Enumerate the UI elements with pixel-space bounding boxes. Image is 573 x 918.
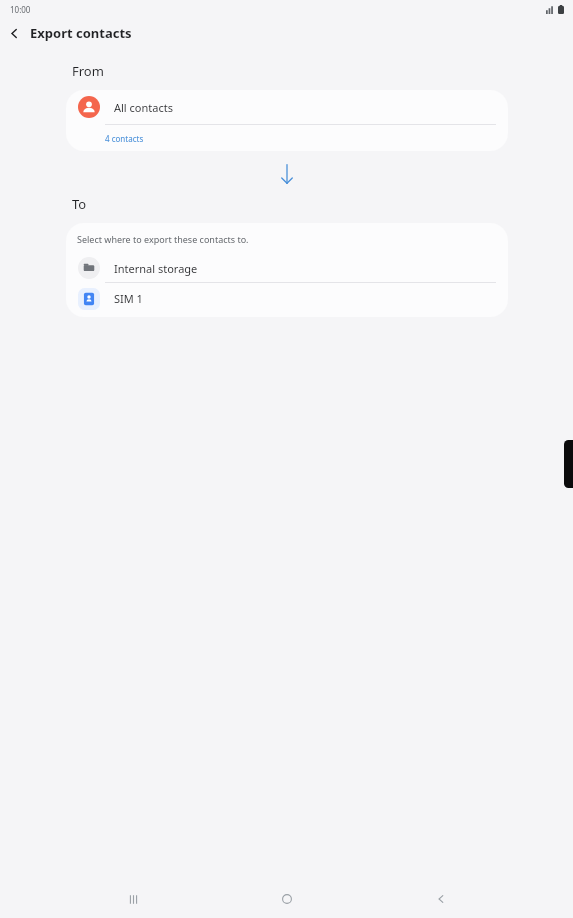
button[interactable]: Recent apps bbox=[111, 880, 155, 918]
staticText: All contacts bbox=[114, 100, 173, 115]
staticText: Select where to export these contacts to… bbox=[77, 233, 249, 245]
button[interactable]: All contacts bbox=[66, 90, 508, 124]
button[interactable]: Back bbox=[419, 880, 463, 918]
button[interactable]: SIM 1 bbox=[66, 283, 508, 314]
staticText: From bbox=[72, 62, 104, 80]
staticText: SIM 1 bbox=[114, 291, 143, 306]
staticText: 4 contacts bbox=[105, 133, 144, 144]
button[interactable]: Edge panel handle bbox=[564, 440, 573, 488]
button[interactable]: Back bbox=[0, 19, 28, 47]
button[interactable]: Home bbox=[265, 880, 309, 918]
staticText: 10:00 bbox=[10, 4, 31, 15]
staticText: Internal storage bbox=[114, 261, 198, 276]
staticText: To bbox=[72, 195, 87, 213]
staticText: Export contacts bbox=[30, 24, 132, 42]
button[interactable]: Internal storage bbox=[66, 254, 508, 282]
button[interactable]: 4 contacts bbox=[66, 125, 508, 151]
